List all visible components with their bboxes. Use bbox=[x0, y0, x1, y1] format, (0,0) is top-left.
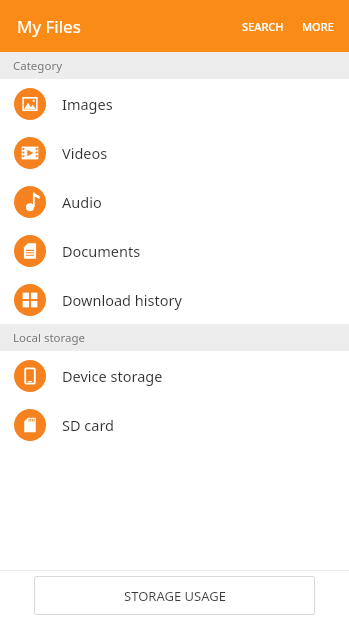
staticText: Local storage bbox=[13, 330, 86, 346]
button[interactable]: Documents bbox=[0, 226, 349, 275]
staticText: Images bbox=[62, 94, 113, 114]
staticText: Audio bbox=[62, 192, 102, 212]
staticText: MORE bbox=[302, 19, 334, 34]
staticText: My Files bbox=[17, 15, 81, 38]
staticText: Download history bbox=[62, 290, 182, 310]
button[interactable]: Images bbox=[0, 79, 349, 128]
button[interactable]: Device storage bbox=[0, 351, 349, 400]
staticText: STORAGE USAGE bbox=[124, 587, 226, 605]
staticText: Documents bbox=[62, 241, 141, 261]
button[interactable]: MORE bbox=[293, 3, 349, 50]
button[interactable]: SEARCH bbox=[233, 3, 293, 50]
button[interactable]: SD card bbox=[0, 400, 349, 449]
button[interactable]: Videos bbox=[0, 128, 349, 177]
staticText: Category bbox=[13, 58, 63, 74]
button[interactable]: STORAGE USAGE bbox=[34, 576, 315, 615]
staticText: Videos bbox=[62, 143, 108, 163]
button[interactable]: Audio bbox=[0, 177, 349, 226]
staticText: SEARCH bbox=[242, 19, 284, 34]
staticText: Device storage bbox=[62, 366, 163, 386]
button[interactable]: Download history bbox=[0, 275, 349, 324]
staticText: SD card bbox=[62, 415, 115, 435]
